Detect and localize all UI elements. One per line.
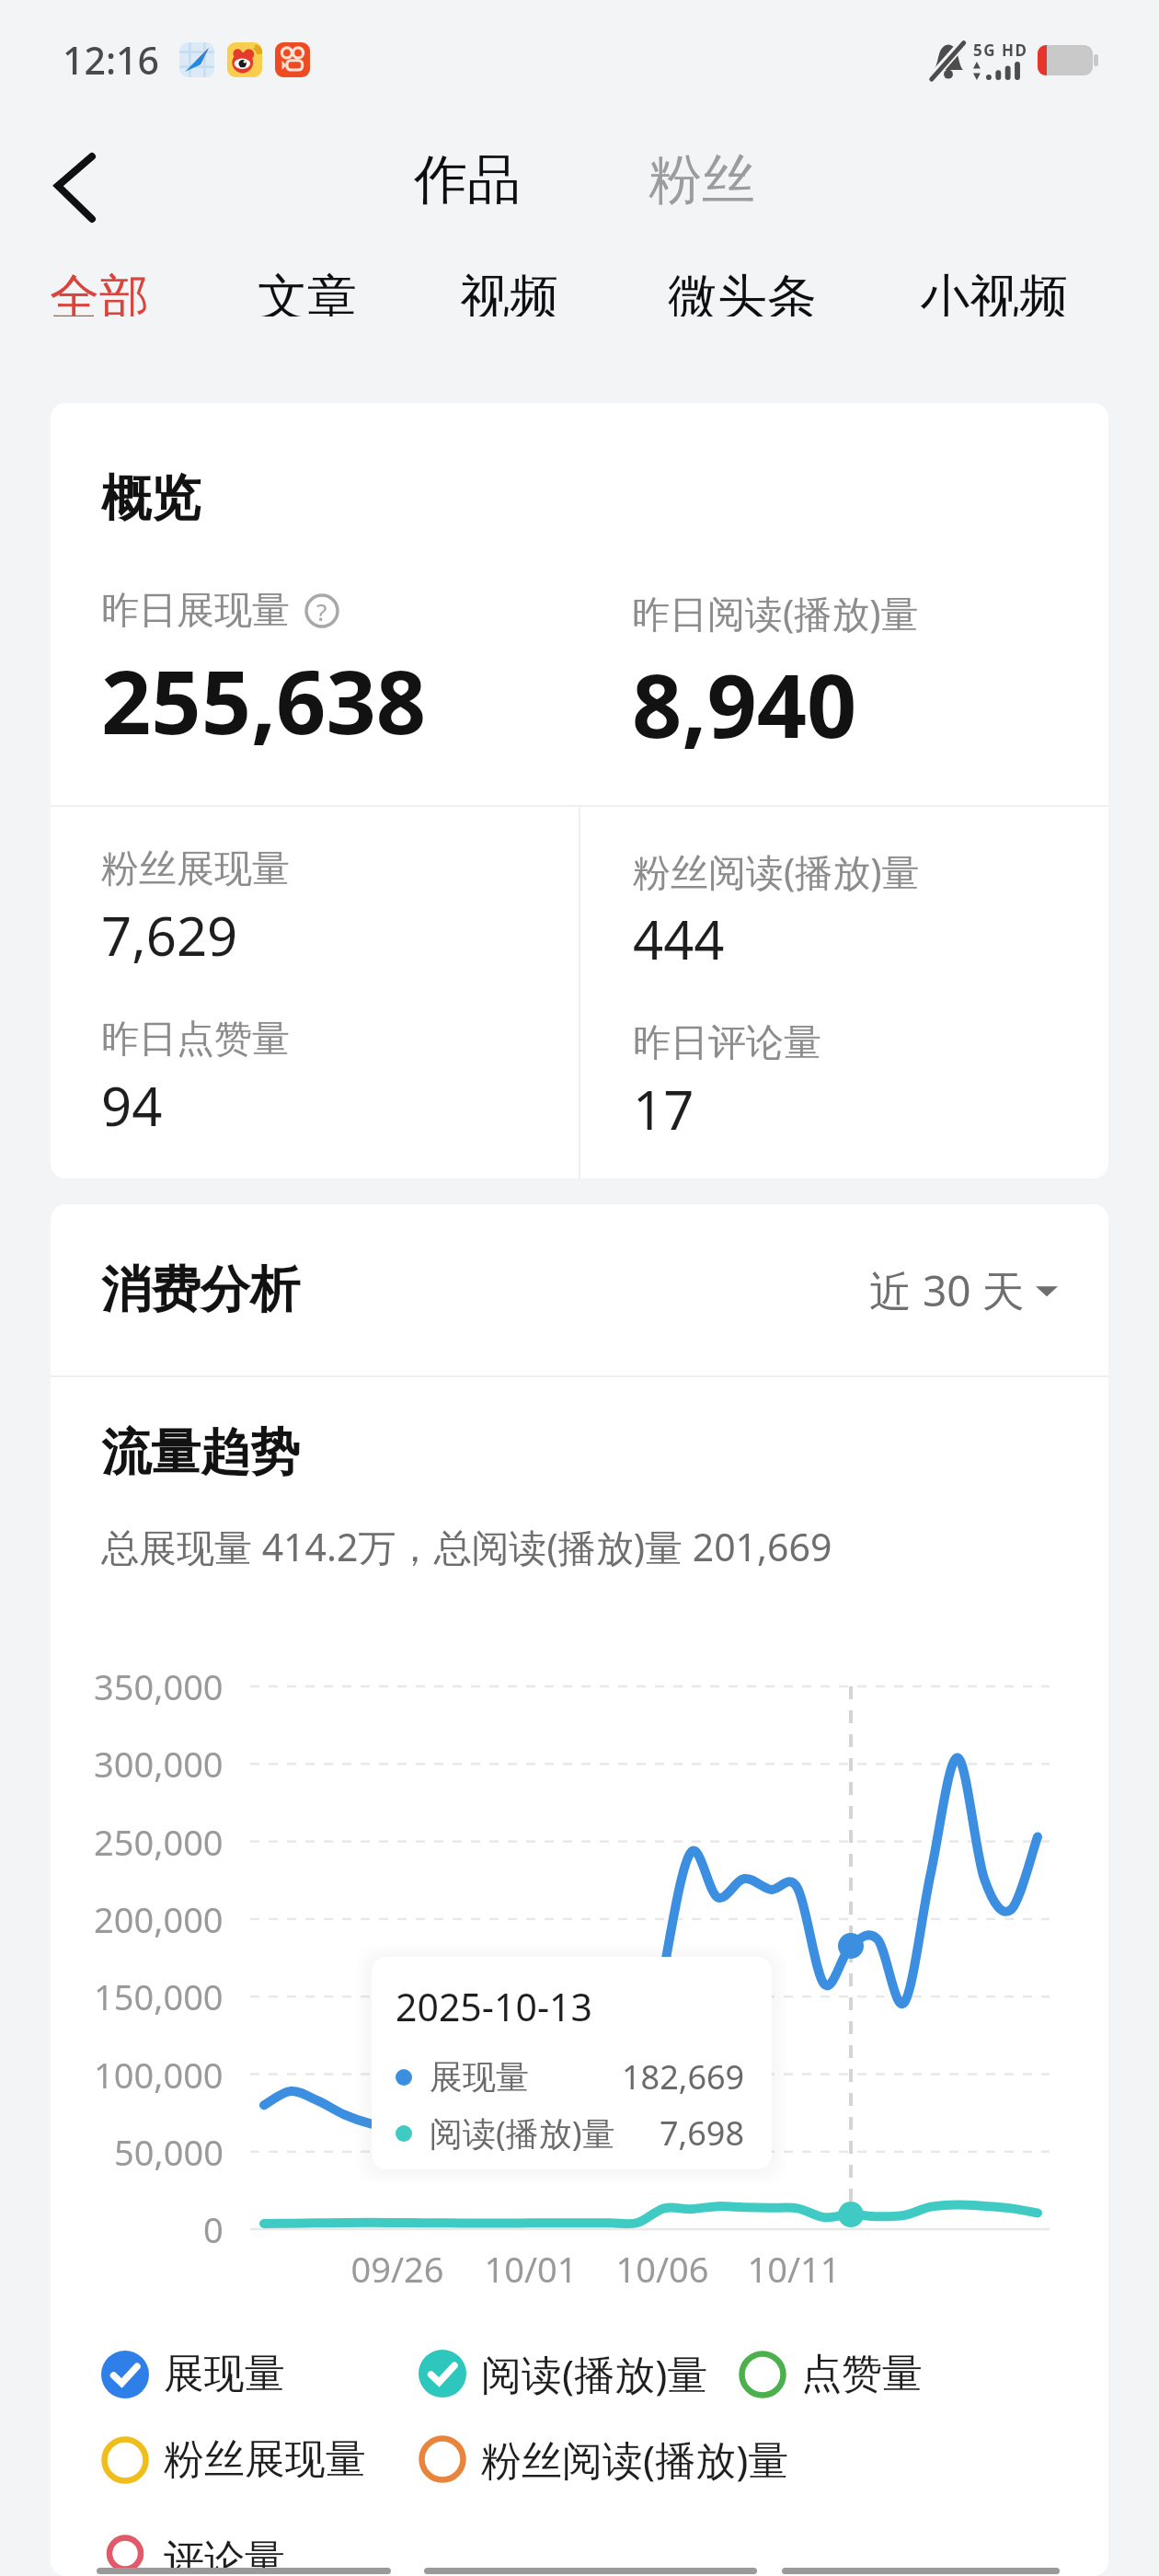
staticText: 粉丝阅读(播放)量	[633, 845, 920, 897]
button[interactable]: 作品	[396, 130, 539, 230]
button[interactable]: 粉丝阅读(播放)量	[419, 2428, 842, 2490]
button[interactable]: 小视频	[900, 239, 1089, 344]
staticText: 粉丝展现量	[164, 2434, 366, 2485]
staticText: 17	[633, 1073, 694, 1145]
button[interactable]: 视频	[440, 239, 579, 344]
staticText: 昨日评论量	[633, 1019, 821, 1067]
staticText: 150,000	[94, 1972, 224, 2020]
staticText: 10/11	[747, 2245, 841, 2293]
staticText: 小视频	[920, 267, 1069, 316]
button[interactable]: 阅读(播放)量	[419, 2342, 739, 2405]
staticText: 2025-10-13	[396, 1981, 593, 2032]
staticText: 作品	[414, 146, 521, 213]
button[interactable]: 全部	[29, 239, 169, 344]
button[interactable]: 近 30 天	[869, 1261, 1058, 1319]
button[interactable]: Back	[24, 140, 125, 232]
button[interactable]: Back	[97, 2568, 391, 2574]
button[interactable]: 粉丝展现量	[101, 2431, 419, 2489]
staticText: 200,000	[94, 1895, 224, 1943]
button[interactable]: 评论量	[101, 2531, 419, 2576]
staticText: 8,940	[632, 644, 857, 763]
staticText: 7,629	[101, 899, 238, 972]
staticText: 概览	[101, 467, 201, 530]
staticText: 7,698	[660, 2110, 745, 2156]
staticText: 300,000	[94, 1740, 224, 1788]
staticText: 阅读(播放)量	[430, 2110, 615, 2156]
button[interactable]: 粉丝	[630, 130, 774, 230]
staticText: 09/26	[350, 2245, 444, 2293]
staticText: 255,638	[101, 640, 427, 759]
button[interactable]: Recents	[782, 2568, 1060, 2574]
staticText: 近 30 天	[869, 1261, 1025, 1319]
staticText: 昨日阅读(播放)量	[632, 587, 919, 638]
staticText: 流量趋势	[101, 1421, 300, 1484]
staticText: 消费分析	[101, 1259, 300, 1321]
button[interactable]: 点赞量	[739, 2345, 978, 2403]
button[interactable]: 微头条	[648, 239, 837, 344]
staticText: 昨日展现量	[101, 587, 290, 635]
staticText: 微头条	[668, 267, 817, 316]
staticText: 评论量	[164, 2535, 285, 2572]
staticText: 444	[633, 903, 725, 975]
staticText: 文章	[258, 267, 357, 316]
staticText: 展现量	[430, 2056, 529, 2098]
button[interactable]: 展现量	[101, 2345, 419, 2403]
staticText: 粉丝	[648, 146, 755, 213]
staticText: 10/06	[615, 2245, 709, 2293]
staticText: 12:16	[63, 34, 159, 86]
staticText: 94	[101, 1069, 163, 1142]
staticText: 5G HD	[973, 40, 1028, 61]
staticText: 视频	[460, 267, 559, 316]
button[interactable]: 文章	[237, 239, 377, 344]
staticText: 阅读(播放)量	[481, 2346, 708, 2401]
staticText: 昨日点赞量	[101, 1016, 290, 1064]
staticText: 350,000	[94, 1662, 224, 1710]
staticText: 10/01	[484, 2245, 578, 2293]
staticText: 展现量	[164, 2349, 285, 2399]
staticText: 粉丝展现量	[101, 845, 290, 893]
staticText: 全部	[50, 267, 149, 316]
staticText: ?	[316, 595, 327, 627]
staticText: 粉丝阅读(播放)量	[481, 2432, 789, 2487]
staticText: 点赞量	[801, 2349, 923, 2399]
staticText: 100,000	[94, 2051, 224, 2099]
staticText: 50,000	[114, 2128, 224, 2176]
button[interactable]: Home	[424, 2568, 757, 2574]
staticText: 总展现量 414.2万，总阅读(播放)量 201,669	[101, 1521, 832, 1572]
staticText: 0	[203, 2205, 224, 2253]
staticText: 182,669	[622, 2054, 745, 2099]
staticText: 250,000	[94, 1818, 224, 1866]
